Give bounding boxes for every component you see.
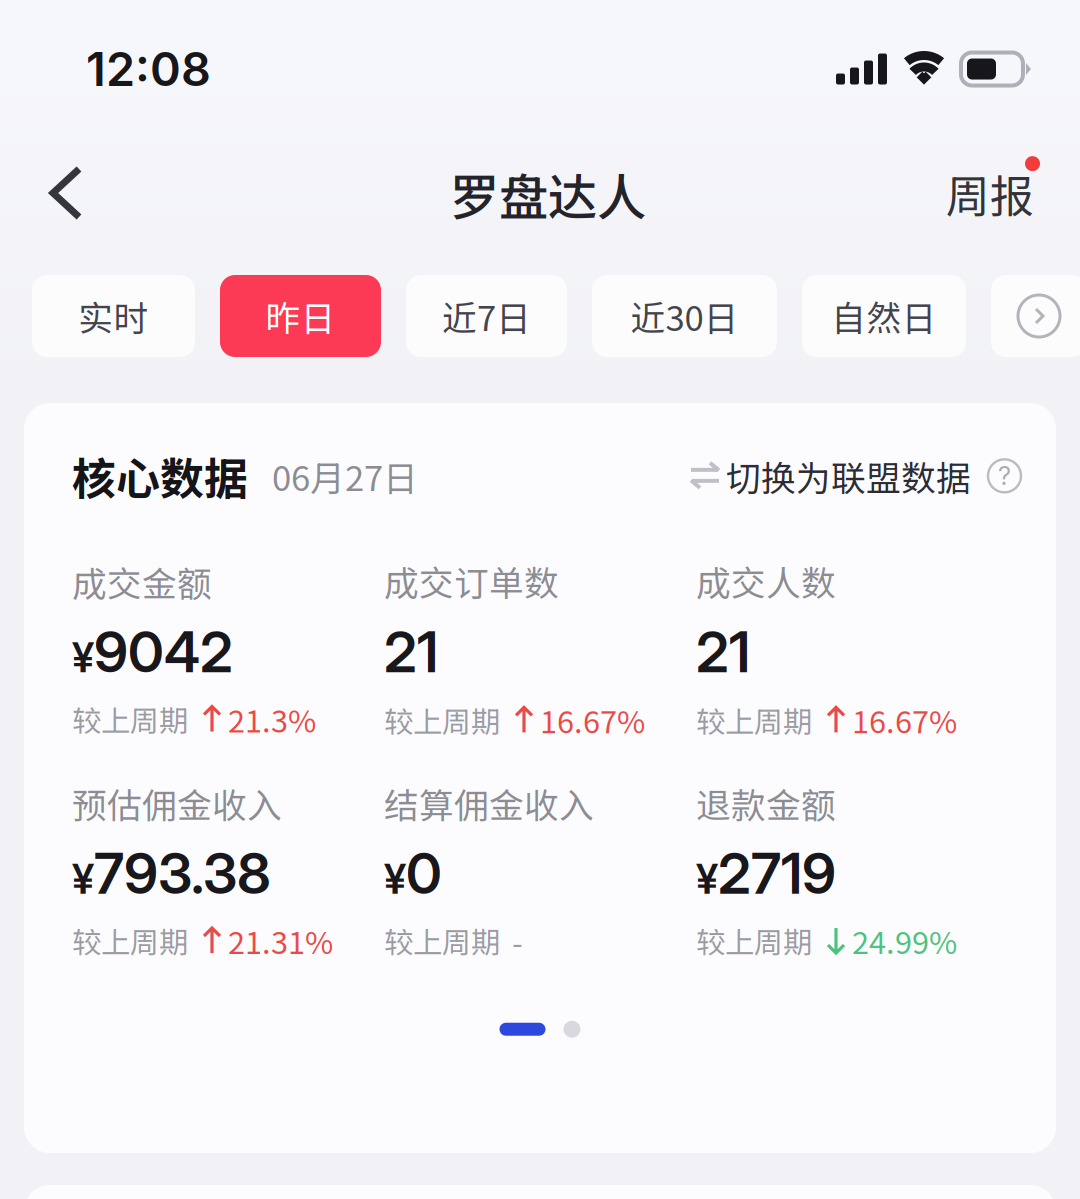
staticText: 昨日 <box>265 291 335 341</box>
staticText: 21 <box>384 618 438 686</box>
staticText: 罗盘达人 <box>450 158 646 230</box>
staticText: 近7日 <box>442 291 531 341</box>
staticText: 较上周期 <box>72 919 188 962</box>
button[interactable]: More date ranges <box>991 275 1080 357</box>
staticText: 较上周期 <box>696 919 812 962</box>
staticText: ¥793.38 <box>72 840 271 906</box>
staticText: 切换为联盟数据 <box>726 451 971 501</box>
staticText: 12:08 <box>86 41 211 97</box>
staticText: 周报 <box>946 161 1034 225</box>
staticText: 较上周期 <box>384 919 500 962</box>
staticText: 21.31% <box>228 918 333 963</box>
staticText: 近30日 <box>630 291 738 341</box>
button[interactable]: 近7日 <box>406 275 567 357</box>
staticText: 预估佣金收入 <box>72 778 282 828</box>
staticText: 较上周期 <box>696 699 812 741</box>
staticText: 21.3% <box>228 697 316 741</box>
staticText: 21 <box>696 618 750 686</box>
button[interactable]: 实时 <box>32 275 195 357</box>
staticText: 成交人数 <box>696 556 836 606</box>
staticText: 退款金额 <box>696 778 836 828</box>
staticText: ¥0 <box>384 840 442 906</box>
staticText: 16.67% <box>852 698 957 742</box>
staticText: 成交订单数 <box>384 556 559 606</box>
staticText: ¥2719 <box>696 840 836 906</box>
staticText: 结算佣金收入 <box>384 778 594 828</box>
staticText: ¥9042 <box>72 619 233 685</box>
staticText: - <box>512 918 523 963</box>
staticText: ? <box>998 460 1011 491</box>
button[interactable]: Back <box>26 145 110 241</box>
staticText: 成交金额 <box>72 557 212 607</box>
button[interactable]: 近30日 <box>592 275 777 357</box>
staticText: 16.67% <box>540 698 645 742</box>
button[interactable]: 自然日 <box>802 275 966 357</box>
staticText: 24.99% <box>852 918 957 963</box>
staticText: 06月27日 <box>272 451 418 501</box>
staticText: 实时 <box>78 291 148 341</box>
staticText: 较上周期 <box>72 698 188 740</box>
button[interactable]: 切换为联盟数据 <box>691 451 1021 501</box>
button[interactable]: 周报 <box>922 141 1054 245</box>
staticText: 核心数据 <box>72 444 248 508</box>
staticText: 较上周期 <box>384 699 500 741</box>
button[interactable]: 昨日 <box>220 275 381 357</box>
staticText: 自然日 <box>831 291 936 341</box>
